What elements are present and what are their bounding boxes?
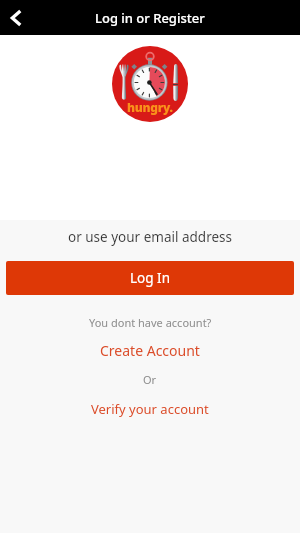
staticText: Verify your account [91,400,209,418]
staticText: Create Account [100,341,200,360]
staticText: You dont have account? [89,315,212,330]
staticText: hungry. [127,99,173,115]
button[interactable]: Back [0,1,34,35]
staticText: Log In [130,269,170,287]
button[interactable]: Verify your account [81,398,219,420]
staticText: Log in or Register [95,9,205,27]
staticText: Or [143,372,157,387]
staticText: or use your email address [68,228,232,246]
button[interactable]: Create Account [90,339,210,362]
button[interactable]: Log In [6,261,294,295]
